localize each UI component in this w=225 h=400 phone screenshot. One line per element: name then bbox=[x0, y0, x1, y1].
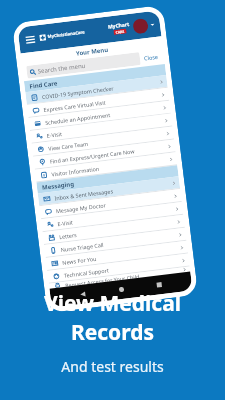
staticText: View Care Team bbox=[48, 140, 88, 152]
button[interactable]: Schedule an Appointment bbox=[28, 101, 171, 130]
button[interactable]: Close bbox=[141, 51, 160, 64]
button[interactable]: E-Visit bbox=[41, 202, 183, 231]
staticText: Messaging bbox=[42, 180, 75, 192]
button[interactable]: Inbox & Sent Messages bbox=[38, 176, 180, 205]
staticText: Close bbox=[144, 53, 158, 61]
button[interactable]: Message My Doctor bbox=[39, 189, 182, 218]
staticText: Inbox & Sent Messages bbox=[54, 187, 113, 201]
button[interactable]: Account profile bbox=[132, 18, 149, 34]
staticText: Letters bbox=[59, 231, 77, 240]
staticText: Visitor Information bbox=[51, 165, 99, 178]
button[interactable]: Nurse Triage Call bbox=[44, 228, 186, 257]
button[interactable]: Technical Support bbox=[47, 254, 190, 283]
button[interactable]: Open navigation menu bbox=[23, 32, 38, 47]
button[interactable]: Recent apps bbox=[152, 278, 166, 292]
staticText: MyChristianaCare bbox=[47, 29, 86, 40]
button[interactable]: View Care Team bbox=[32, 126, 174, 156]
staticText: CARE bbox=[115, 29, 125, 35]
staticText: COVID-19 Symptom Checker bbox=[41, 84, 114, 100]
button[interactable]: Find an Express/Urgent Care Now bbox=[33, 139, 176, 169]
button[interactable]: E-Visit bbox=[30, 114, 172, 143]
button[interactable]: COVID-19 Symptom Checker bbox=[25, 75, 168, 104]
staticText: Find Care bbox=[29, 79, 58, 91]
staticText: Message My Doctor bbox=[55, 201, 107, 214]
staticText: E-Visit bbox=[57, 218, 74, 227]
button[interactable]: Request Access for Your Child bbox=[49, 266, 190, 289]
staticText: Nurse Triage Call bbox=[60, 241, 105, 253]
button[interactable]: Switch account bbox=[150, 22, 155, 27]
staticText: Request Access for Your Child bbox=[65, 273, 140, 287]
staticText: Find an Express/Urgent Care Now bbox=[49, 147, 136, 165]
staticText: MyChart bbox=[107, 21, 130, 31]
button[interactable]: Letters bbox=[42, 215, 185, 244]
button[interactable]: Home bbox=[114, 282, 129, 297]
staticText: Express Care Virtual Visit bbox=[43, 98, 106, 113]
staticText: View Medical Records bbox=[0, 289, 225, 347]
staticText: Search the menu bbox=[37, 62, 86, 75]
staticText: And test results bbox=[61, 357, 164, 376]
button[interactable]: Express Care Virtual Visit bbox=[27, 88, 169, 117]
staticText: Technical Support bbox=[63, 266, 110, 279]
button[interactable]: Back bbox=[76, 287, 90, 301]
staticText: E-Visit bbox=[46, 130, 63, 139]
button[interactable]: News For You bbox=[46, 241, 188, 270]
button[interactable]: Search the menu bbox=[26, 52, 141, 79]
staticText: Your Menu bbox=[75, 46, 109, 58]
staticText: News For You bbox=[62, 255, 97, 266]
button[interactable]: Visitor Information bbox=[35, 152, 177, 181]
staticText: Schedule an Appointment bbox=[45, 111, 111, 126]
